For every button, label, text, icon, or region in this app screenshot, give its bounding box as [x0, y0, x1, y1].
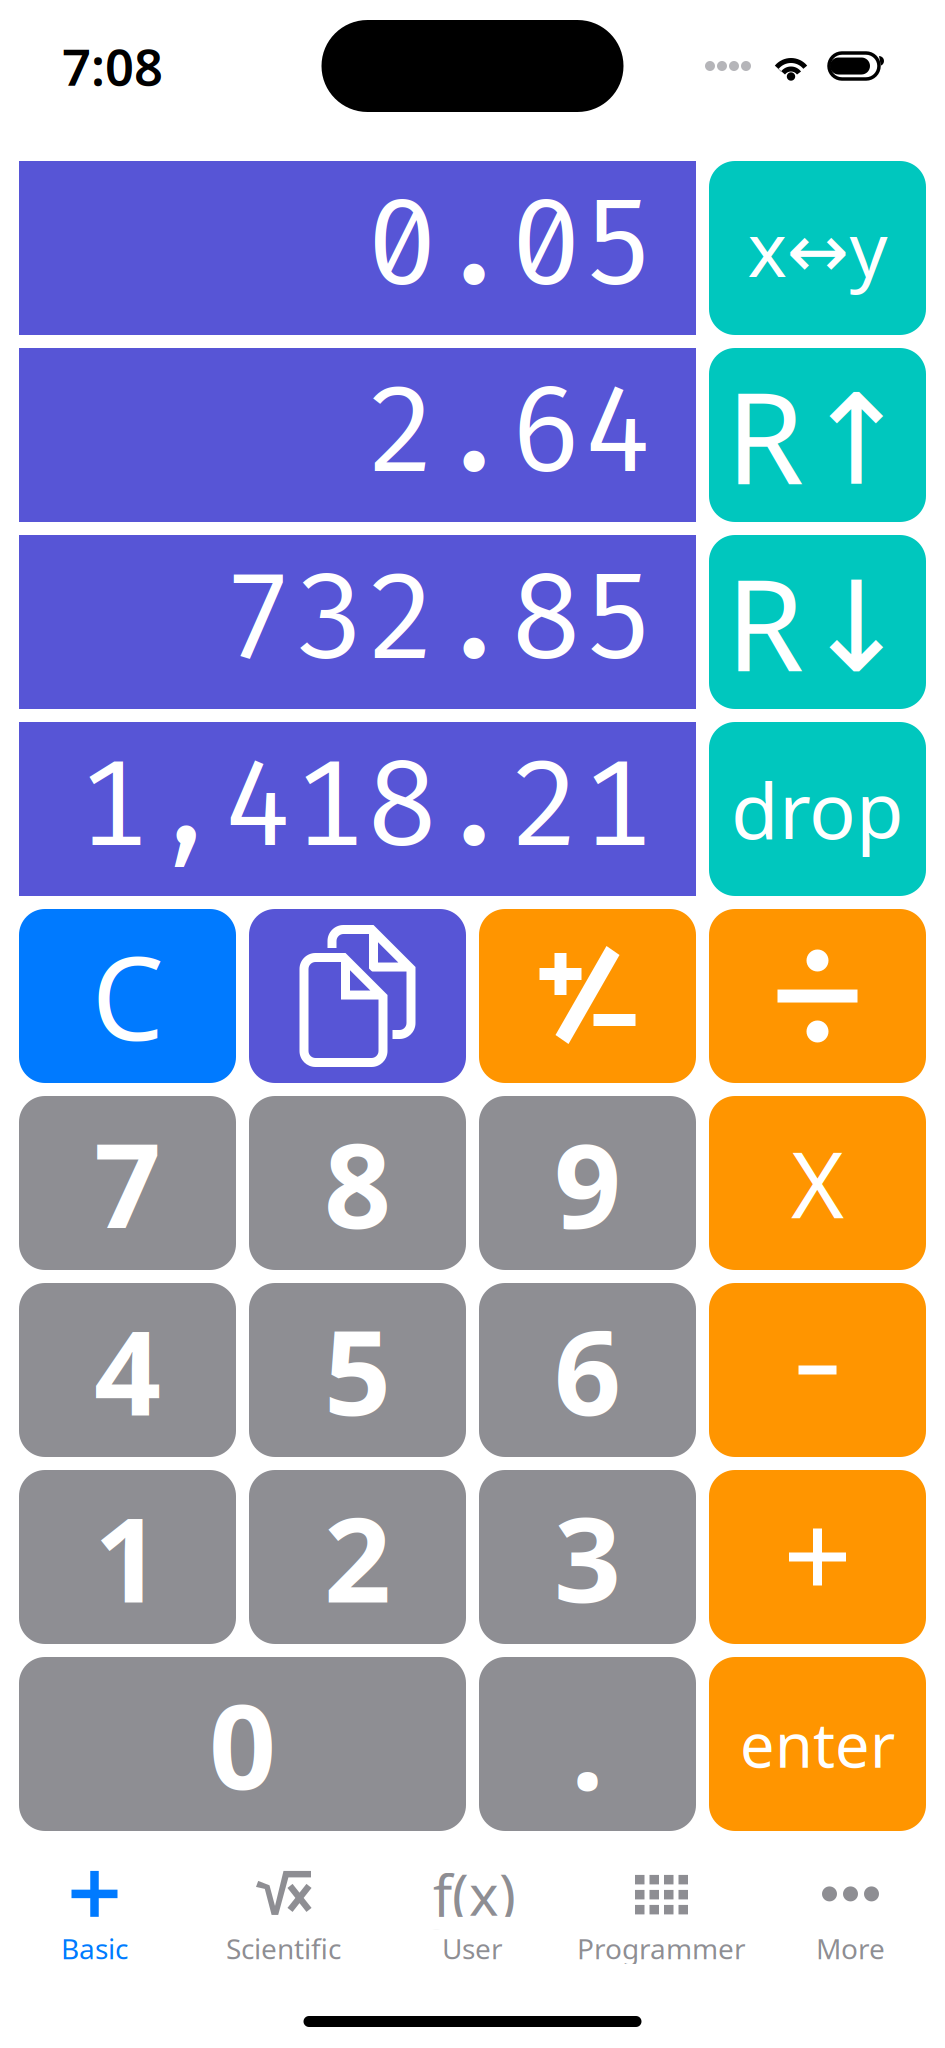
- button[interactable]: C: [19, 909, 236, 1083]
- button[interactable]: 9: [479, 1096, 696, 1270]
- staticText: 8: [324, 1105, 391, 1261]
- staticText: 1: [94, 1479, 161, 1635]
- staticText: R↓: [726, 539, 909, 705]
- staticText: 6: [554, 1292, 621, 1448]
- button[interactable]: More: [756, 1860, 945, 1964]
- staticText: ƒ(x): [429, 1857, 516, 1931]
- staticText: R↑: [726, 352, 909, 518]
- button[interactable]: .: [479, 1657, 696, 1831]
- button[interactable]: ƒ(x): [378, 1860, 567, 1964]
- staticText: drop: [731, 758, 904, 860]
- staticText: C: [91, 920, 163, 1072]
- button[interactable]: Programmer: [567, 1860, 756, 1964]
- button[interactable]: Scientific: [189, 1860, 378, 1964]
- button[interactable]: Copy: [249, 909, 466, 1083]
- button[interactable]: Divide: [709, 909, 926, 1083]
- button[interactable]: 0.05: [19, 161, 696, 335]
- button[interactable]: 1,418.21: [19, 722, 696, 896]
- staticText: More: [816, 1930, 885, 1967]
- button[interactable]: 2: [249, 1470, 466, 1644]
- button[interactable]: 1: [19, 1470, 236, 1644]
- staticText: 2: [324, 1479, 391, 1635]
- button[interactable]: R↓: [709, 535, 926, 709]
- button[interactable]: X: [709, 1096, 926, 1270]
- button[interactable]: 5: [249, 1283, 466, 1457]
- staticText: 5: [324, 1292, 391, 1448]
- staticText: 0: [209, 1666, 276, 1822]
- button[interactable]: 8: [249, 1096, 466, 1270]
- staticText: User: [442, 1930, 503, 1967]
- staticText: 1,418.21: [78, 737, 654, 881]
- staticText: 7: [94, 1105, 161, 1261]
- button[interactable]: Basic: [0, 1860, 189, 1964]
- button[interactable]: R↑: [709, 348, 926, 522]
- staticText: 2.64: [366, 363, 654, 507]
- staticText: X: [791, 1123, 844, 1243]
- button[interactable]: 3: [479, 1470, 696, 1644]
- staticText: Basic: [61, 1930, 128, 1967]
- button[interactable]: 6: [479, 1283, 696, 1457]
- staticText: 732.85: [222, 550, 654, 694]
- button[interactable]: 732.85: [19, 535, 696, 709]
- staticText: 4: [94, 1292, 161, 1448]
- button[interactable]: 2.64: [19, 348, 696, 522]
- staticText: Programmer: [577, 1930, 746, 1967]
- staticText: 7:08: [62, 32, 163, 100]
- staticText: 0.05: [366, 176, 654, 320]
- staticText: 9: [554, 1105, 621, 1261]
- button[interactable]: drop: [709, 722, 926, 896]
- button[interactable]: 4: [19, 1283, 236, 1457]
- button[interactable]: Minus: [709, 1283, 926, 1457]
- button[interactable]: 0: [19, 1657, 466, 1831]
- staticText: enter: [740, 1703, 895, 1785]
- button[interactable]: Plus or minus: [479, 909, 696, 1083]
- staticText: x↔y: [747, 198, 887, 298]
- staticText: Scientific: [226, 1930, 341, 1967]
- button[interactable]: Plus: [709, 1470, 926, 1644]
- button[interactable]: x↔y: [709, 161, 926, 335]
- button[interactable]: 7: [19, 1096, 236, 1270]
- button[interactable]: enter: [709, 1657, 926, 1831]
- staticText: .: [571, 1666, 604, 1822]
- staticText: 3: [554, 1479, 621, 1635]
